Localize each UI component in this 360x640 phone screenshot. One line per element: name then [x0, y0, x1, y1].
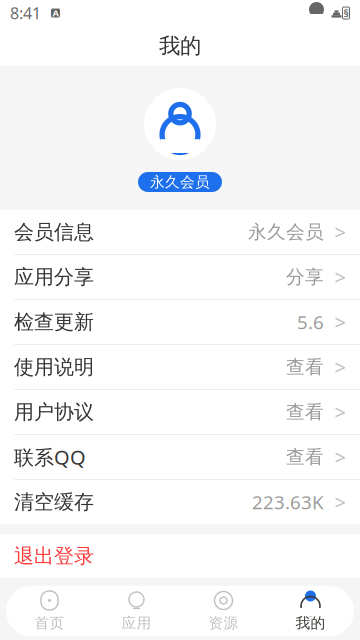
staticText: 永久会员: [150, 173, 210, 191]
button[interactable]: 应用分享: [0, 255, 360, 299]
staticText: 查看: [286, 445, 324, 468]
staticText: 检查更新: [14, 310, 94, 334]
staticText: >: [334, 264, 345, 290]
button[interactable]: 永久会员: [138, 172, 222, 192]
staticText: 应用: [121, 614, 151, 632]
staticText: 5.6: [297, 310, 324, 334]
button[interactable]: 首页: [6, 588, 93, 634]
staticText: 8:41: [10, 2, 41, 24]
staticText: >: [334, 399, 345, 425]
staticText: 用户协议: [14, 400, 94, 424]
staticText: >: [334, 354, 345, 380]
button[interactable]: 资源: [180, 588, 267, 634]
staticText: 永久会员: [248, 220, 324, 243]
button[interactable]: 清空缓存: [0, 480, 360, 524]
staticText: >: [334, 219, 345, 245]
staticText: A: [52, 7, 58, 19]
staticText: 使用说明: [14, 355, 94, 379]
staticText: 清空缓存: [14, 490, 94, 514]
staticText: 联系QQ: [14, 444, 86, 470]
staticText: 会员信息: [14, 220, 94, 244]
staticText: 首页: [34, 614, 64, 632]
staticText: 查看: [286, 355, 324, 378]
staticText: §: [343, 6, 348, 20]
staticText: 我的: [159, 33, 201, 59]
staticText: 资源: [208, 614, 238, 632]
staticText: 退出登录: [14, 544, 94, 568]
staticText: >: [334, 309, 345, 335]
button[interactable]: 用户协议: [0, 390, 360, 434]
button[interactable]: 应用: [93, 588, 180, 634]
staticText: >: [334, 444, 345, 470]
button[interactable]: 退出登录: [0, 534, 360, 578]
button[interactable]: 我的: [267, 588, 354, 634]
button[interactable]: 检查更新: [0, 300, 360, 344]
staticText: 分享: [286, 265, 324, 288]
button[interactable]: 联系QQ: [0, 435, 360, 479]
button[interactable]: 使用说明: [0, 345, 360, 389]
staticText: 应用分享: [14, 265, 94, 289]
staticText: 查看: [286, 400, 324, 423]
staticText: 223.63K: [252, 490, 324, 514]
staticText: 我的: [295, 614, 325, 632]
staticText: >: [334, 489, 345, 515]
button[interactable]: Avatar: [144, 88, 216, 160]
button[interactable]: 会员信息: [0, 210, 360, 254]
